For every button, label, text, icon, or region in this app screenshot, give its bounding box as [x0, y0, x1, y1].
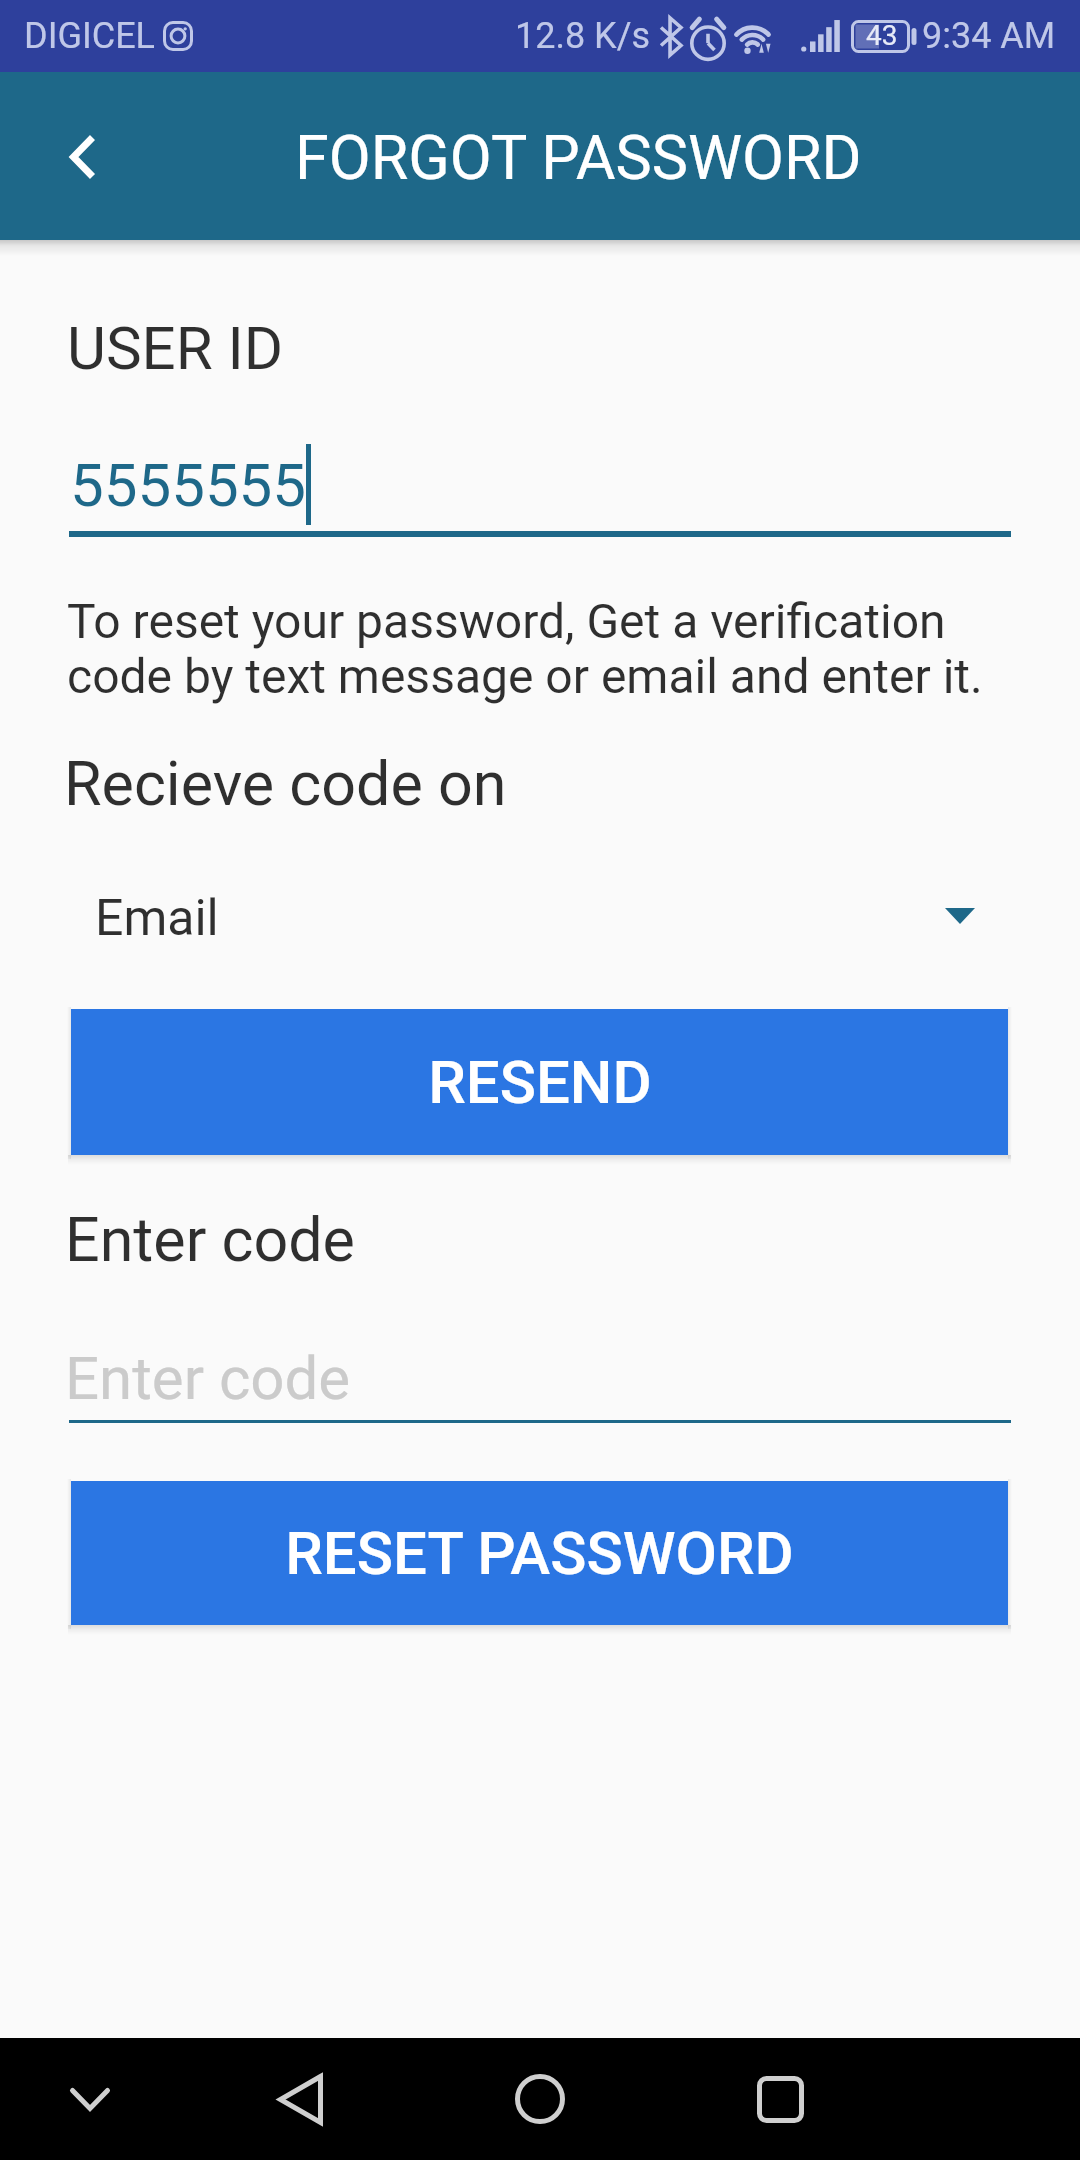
staticText: 9:34 AM — [922, 15, 1056, 57]
staticText: Recieve code on — [64, 748, 507, 819]
staticText: DIGICEL — [24, 15, 156, 57]
staticText: RESEND — [428, 1047, 652, 1117]
button[interactable]: Email — [69, 862, 1011, 970]
staticText: 43 — [866, 19, 898, 52]
button[interactable]: Back — [43, 117, 122, 196]
staticText: 12.8 K/s — [515, 15, 651, 57]
staticText: Enter code — [65, 1343, 351, 1413]
staticText: USER ID — [67, 313, 284, 383]
button[interactable]: Home — [496, 2038, 584, 2160]
button[interactable]: Hide keyboard — [46, 2038, 134, 2160]
staticText: Email — [95, 889, 219, 948]
button[interactable]: RESET PASSWORD — [71, 1481, 1008, 1625]
staticText: 5555555 — [70, 450, 307, 520]
staticText: Enter code — [65, 1204, 355, 1275]
button[interactable]: Back — [256, 2038, 344, 2160]
staticText: RESET PASSWORD — [285, 1518, 794, 1588]
button[interactable]: Recents — [736, 2038, 824, 2160]
button[interactable]: RESEND — [71, 1009, 1008, 1155]
staticText: FORGOT PASSWORD — [295, 122, 862, 193]
staticText: To reset your password, Get a verificati… — [67, 593, 983, 705]
